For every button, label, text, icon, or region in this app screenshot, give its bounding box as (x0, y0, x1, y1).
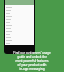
staticText: most powerful features (0, 59, 64, 63)
staticText: of your product with (0, 63, 64, 67)
staticText: guide and unlock the (0, 55, 64, 59)
staticText: in-app messaging (0, 67, 64, 71)
staticText: Find our customers' usage (0, 51, 64, 55)
